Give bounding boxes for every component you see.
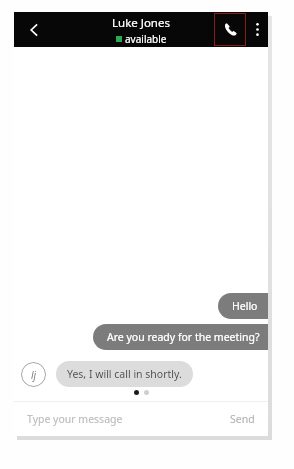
staticText: Are you ready for the meeting? xyxy=(107,330,260,344)
button[interactable]: Hello xyxy=(218,293,268,319)
staticText: Hello xyxy=(232,299,258,313)
staticText: Luke Jones xyxy=(112,15,170,31)
button[interactable]: More options xyxy=(246,12,268,47)
button[interactable]: Are you ready for the meeting? xyxy=(93,324,268,350)
staticText: lj xyxy=(31,368,37,382)
button[interactable]: Yes, I will call in shortly. xyxy=(56,361,193,387)
button[interactable]: Luke Jones avatar xyxy=(21,362,46,387)
staticText: available xyxy=(125,32,167,46)
staticText: Send xyxy=(230,412,255,426)
button[interactable]: Back xyxy=(14,12,54,47)
staticText: Yes, I will call in shortly. xyxy=(67,367,182,381)
button[interactable]: Call xyxy=(214,13,246,46)
button[interactable]: Send xyxy=(222,402,255,436)
staticText: Type your message xyxy=(27,412,123,426)
button[interactable]: Type your message xyxy=(27,402,222,436)
